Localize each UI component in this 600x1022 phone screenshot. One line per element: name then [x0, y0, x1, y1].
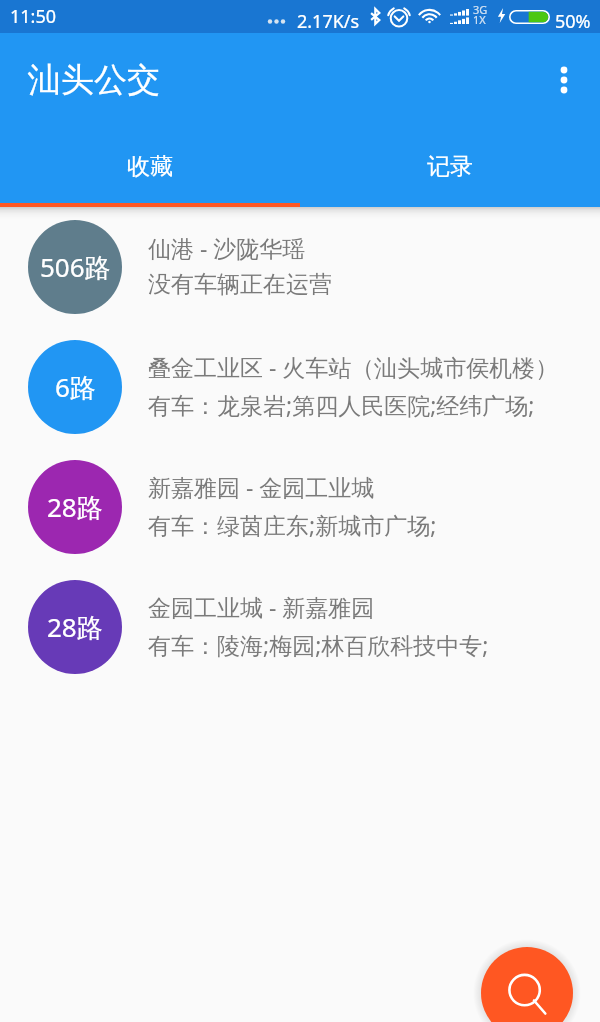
- staticText: 汕头公交: [28, 59, 160, 101]
- staticText: 506路: [40, 249, 111, 285]
- staticText: 新嘉雅园 - 金园工业城: [148, 471, 375, 502]
- staticText: 收藏: [127, 152, 173, 181]
- staticText: 有车：龙泉岩;第四人民医院;经纬广场;: [148, 389, 535, 420]
- staticText: 金园工业城 - 新嘉雅园: [148, 591, 375, 622]
- button[interactable]: Search: [481, 947, 573, 1022]
- button[interactable]: 记录: [300, 126, 600, 203]
- staticText: 28路: [47, 489, 103, 525]
- staticText: 28路: [47, 609, 103, 645]
- staticText: 有车：绿茵庄东;新城市广场;: [148, 509, 437, 540]
- button[interactable]: More options: [542, 58, 586, 102]
- staticText: 3G: [473, 2, 488, 17]
- button[interactable]: 6路: [0, 327, 600, 447]
- button[interactable]: 28路: [0, 447, 600, 567]
- button[interactable]: 28路: [0, 567, 600, 687]
- staticText: 6路: [55, 369, 96, 405]
- staticText: 11:50: [10, 4, 57, 29]
- button[interactable]: 506路: [0, 207, 600, 327]
- staticText: 有车：陵海;梅园;林百欣科技中专;: [148, 629, 489, 660]
- staticText: 1X: [473, 12, 486, 27]
- staticText: 叠金工业区 - 火车站（汕头城市侯机楼）: [148, 351, 559, 382]
- button[interactable]: 收藏: [0, 126, 300, 203]
- staticText: 2.17K/s: [297, 9, 360, 34]
- staticText: 没有车辆正在运营: [148, 270, 332, 299]
- staticText: 仙港 - 沙陇华瑶: [148, 232, 306, 263]
- staticText: 记录: [427, 152, 473, 181]
- staticText: 50%: [555, 9, 591, 34]
